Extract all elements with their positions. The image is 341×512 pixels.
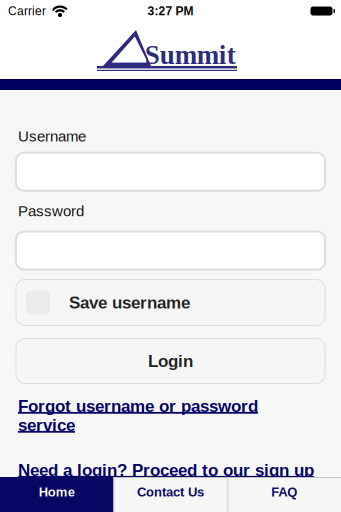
staticText: Login (148, 351, 193, 370)
button[interactable]: Need a login? Proceed to our sign up (18, 460, 340, 479)
button[interactable]: Home (0, 477, 114, 512)
staticText: FAQ (271, 485, 297, 499)
staticText: Forgot username or password service (18, 396, 258, 434)
button[interactable]: Contact Us (114, 477, 227, 512)
button[interactable]: Login (16, 338, 325, 383)
staticText: Username (18, 128, 86, 145)
button[interactable]: FAQ (227, 477, 341, 512)
button[interactable] (16, 231, 325, 269)
staticText: Contact Us (137, 485, 204, 499)
button[interactable]: Forgot username or password service (18, 396, 313, 434)
staticText: Carrier (8, 4, 46, 18)
staticText: 3:27 PM (147, 4, 193, 18)
staticText: Password (18, 203, 84, 220)
button[interactable] (16, 153, 325, 191)
staticText: Home (39, 485, 75, 499)
staticText: Need a login? Proceed to our sign up (18, 460, 314, 479)
button[interactable]: Save username (16, 279, 325, 325)
staticText: Summit (145, 40, 236, 70)
staticText: Save username (69, 293, 190, 312)
